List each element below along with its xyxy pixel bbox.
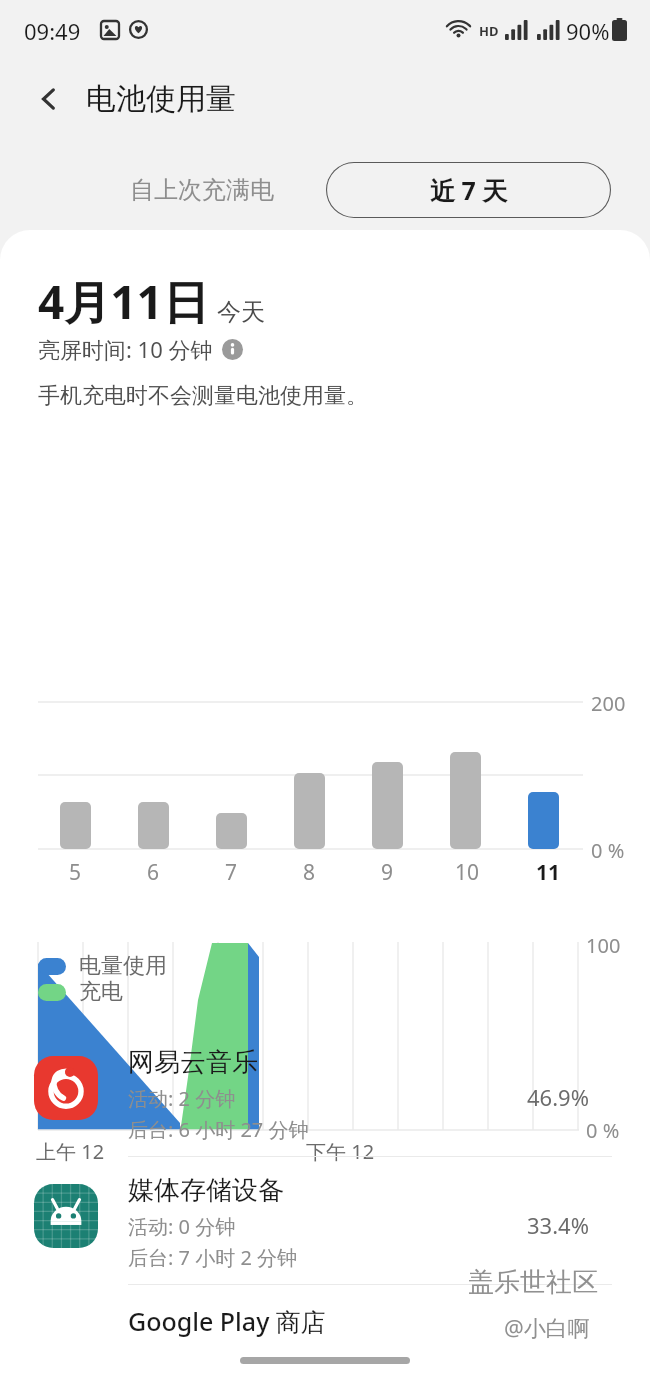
staticText: 电池使用量 — [86, 80, 236, 118]
staticText: 33.4% — [527, 1210, 589, 1240]
button[interactable]: Back — [22, 72, 76, 126]
staticText: @小白啊 — [504, 1312, 590, 1342]
staticText: 媒体存储设备 — [128, 1174, 284, 1207]
staticText: 充电 — [79, 978, 123, 1006]
staticText: 10 — [455, 858, 480, 887]
staticText: 网易云音乐 — [128, 1046, 258, 1079]
staticText: 活动: 2 分钟 — [128, 1085, 236, 1112]
button[interactable]: 网易云音乐 — [0, 1030, 650, 1158]
staticText: 自上次充满电 — [130, 175, 274, 205]
staticText: 5 — [69, 858, 82, 887]
staticText: 活动: 0 分钟 — [128, 1213, 236, 1240]
staticText: 下午 12 — [306, 1138, 375, 1165]
button[interactable]: Google Play 商店 — [0, 1288, 650, 1373]
staticText: 6 — [147, 858, 160, 887]
staticText: HD — [479, 22, 499, 40]
button[interactable]: 近 7 天 — [326, 162, 611, 218]
staticText: 盖乐世社区 — [468, 1266, 598, 1299]
staticText: 46.9% — [527, 1082, 589, 1112]
staticText: 0 % — [591, 837, 625, 864]
staticText: 09:49 — [24, 16, 81, 46]
staticText: 11 — [536, 858, 561, 887]
staticText: 8 — [303, 858, 316, 887]
staticText: 上午 12 — [36, 1138, 105, 1165]
staticText: 后台: 6 小时 27 分钟 — [128, 1116, 309, 1143]
button[interactable]: Info — [222, 339, 243, 360]
staticText: 4月11日 — [38, 270, 209, 333]
staticText: 手机充电时不会测量电池使用量。 — [38, 382, 368, 410]
staticText: 后台: 7 小时 2 分钟 — [128, 1244, 298, 1271]
staticText: 近 7 天 — [430, 173, 508, 207]
staticText: 电量使用 — [79, 952, 167, 980]
staticText: 90% — [566, 16, 610, 46]
staticText: 9 — [381, 858, 394, 887]
button[interactable]: 自上次充满电 — [80, 163, 324, 217]
staticText: 7 — [225, 858, 238, 887]
button[interactable]: 媒体存储设备 — [0, 1158, 650, 1286]
staticText: 200 — [591, 690, 626, 717]
staticText: 100 — [586, 932, 621, 959]
staticText: 今天 — [217, 297, 265, 327]
staticText: Google Play 商店 — [128, 1304, 326, 1338]
staticText: 0 % — [586, 1117, 620, 1144]
staticText: 亮屏时间: 10 分钟 — [38, 334, 213, 364]
